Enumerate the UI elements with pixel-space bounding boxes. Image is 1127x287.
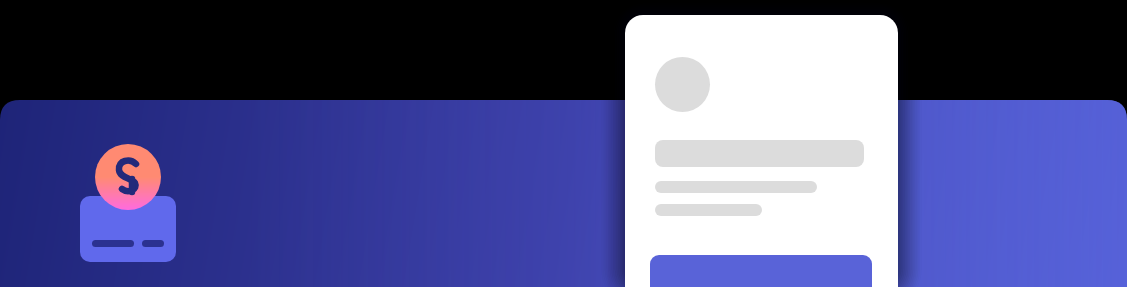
button[interactable]: Continue (650, 255, 872, 287)
button[interactable]: Payment card (74, 140, 184, 268)
button[interactable]: Profile avatar (655, 57, 710, 112)
